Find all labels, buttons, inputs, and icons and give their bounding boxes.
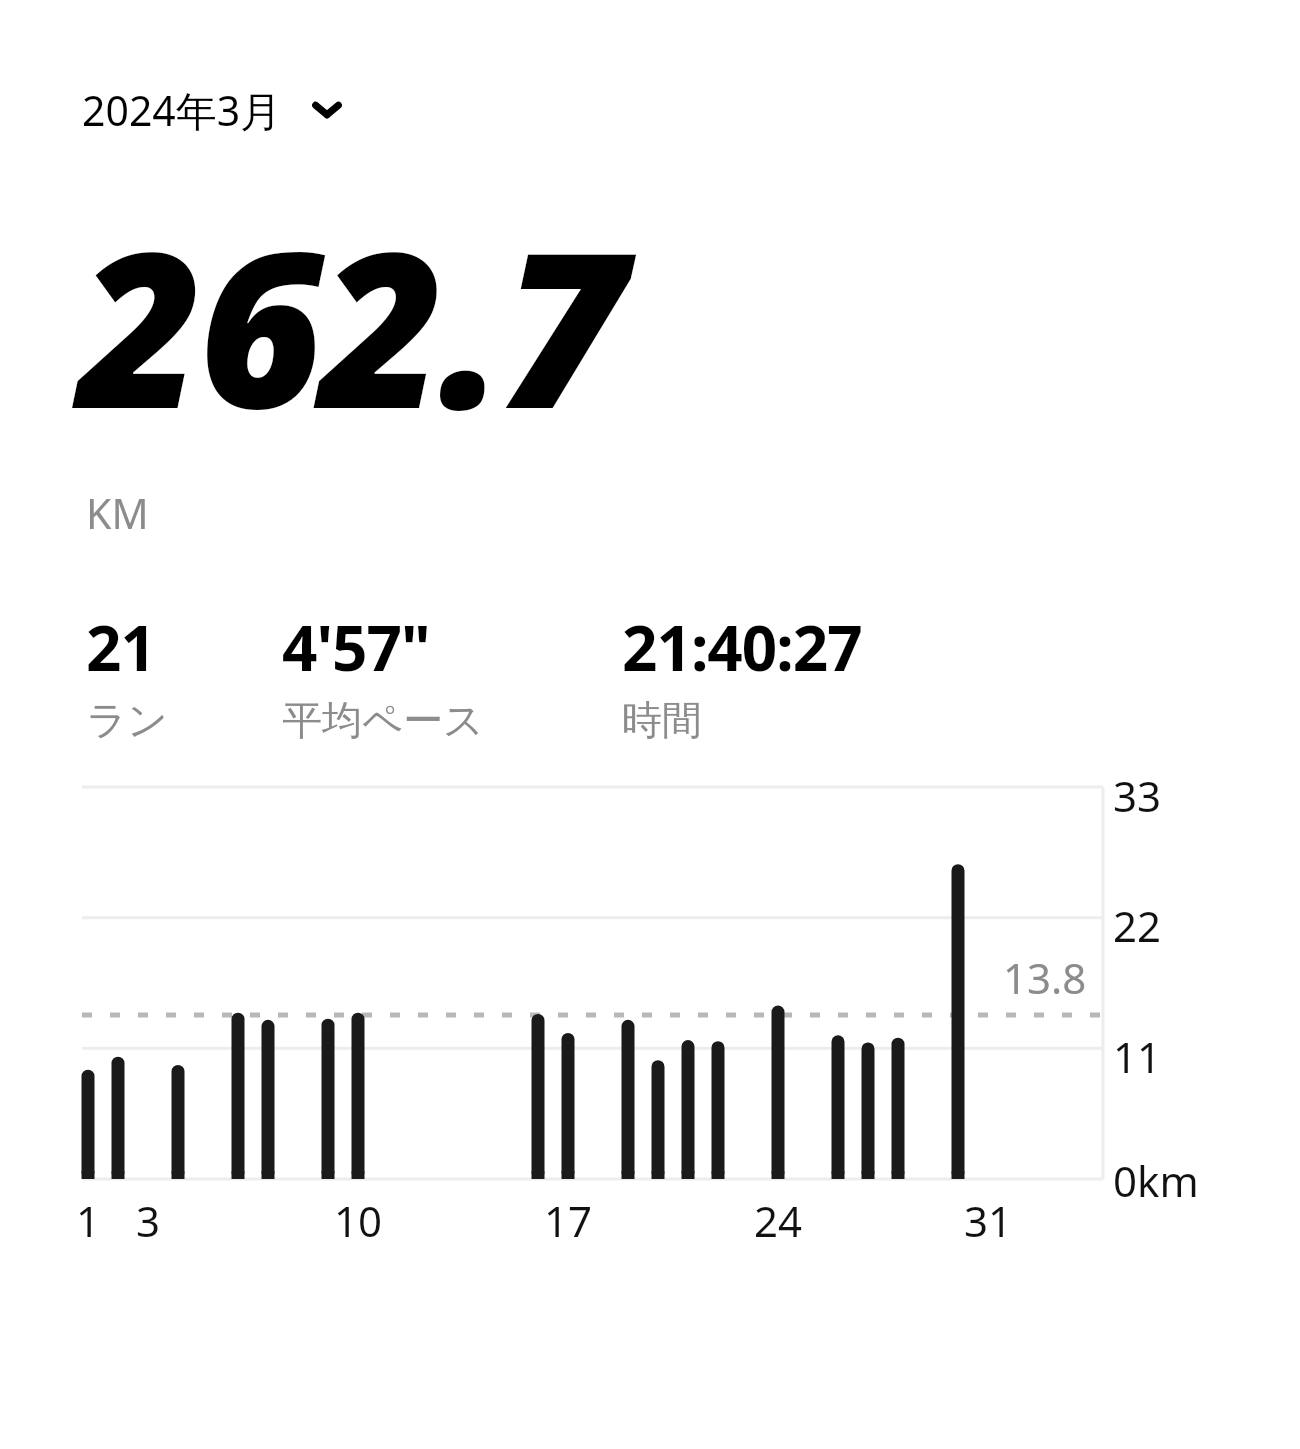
staticText: 0km xyxy=(1113,1152,1199,1209)
staticText: 11 xyxy=(1113,1028,1162,1085)
staticText: 4'57" xyxy=(282,605,430,689)
button[interactable]: 21 xyxy=(86,605,168,745)
staticText: 17 xyxy=(528,1192,608,1249)
staticText: ラン xyxy=(86,695,168,745)
button[interactable]: 4'57" xyxy=(282,605,484,745)
staticText: 31 xyxy=(948,1192,1028,1249)
staticText: 時間 xyxy=(622,695,702,745)
staticText: 1 xyxy=(48,1192,128,1249)
staticText: KM xyxy=(86,485,149,541)
staticText: 33 xyxy=(1113,767,1162,824)
staticText: 22 xyxy=(1113,897,1162,954)
staticText: 21 xyxy=(86,605,155,689)
staticText: 2024年3月 xyxy=(82,82,282,138)
staticText: 13.8 xyxy=(1003,949,1087,1006)
other: Change month xyxy=(308,95,346,125)
button[interactable]: 2024年3月 xyxy=(82,78,354,142)
staticText: 10 xyxy=(318,1192,398,1249)
staticText: 262.7 xyxy=(78,178,623,471)
staticText: 3 xyxy=(108,1192,188,1249)
staticText: 21:40:27 xyxy=(622,605,862,689)
staticText: 24 xyxy=(738,1192,818,1249)
staticText: 平均ペース xyxy=(282,695,484,745)
button[interactable]: 21:40:27 xyxy=(622,605,862,745)
